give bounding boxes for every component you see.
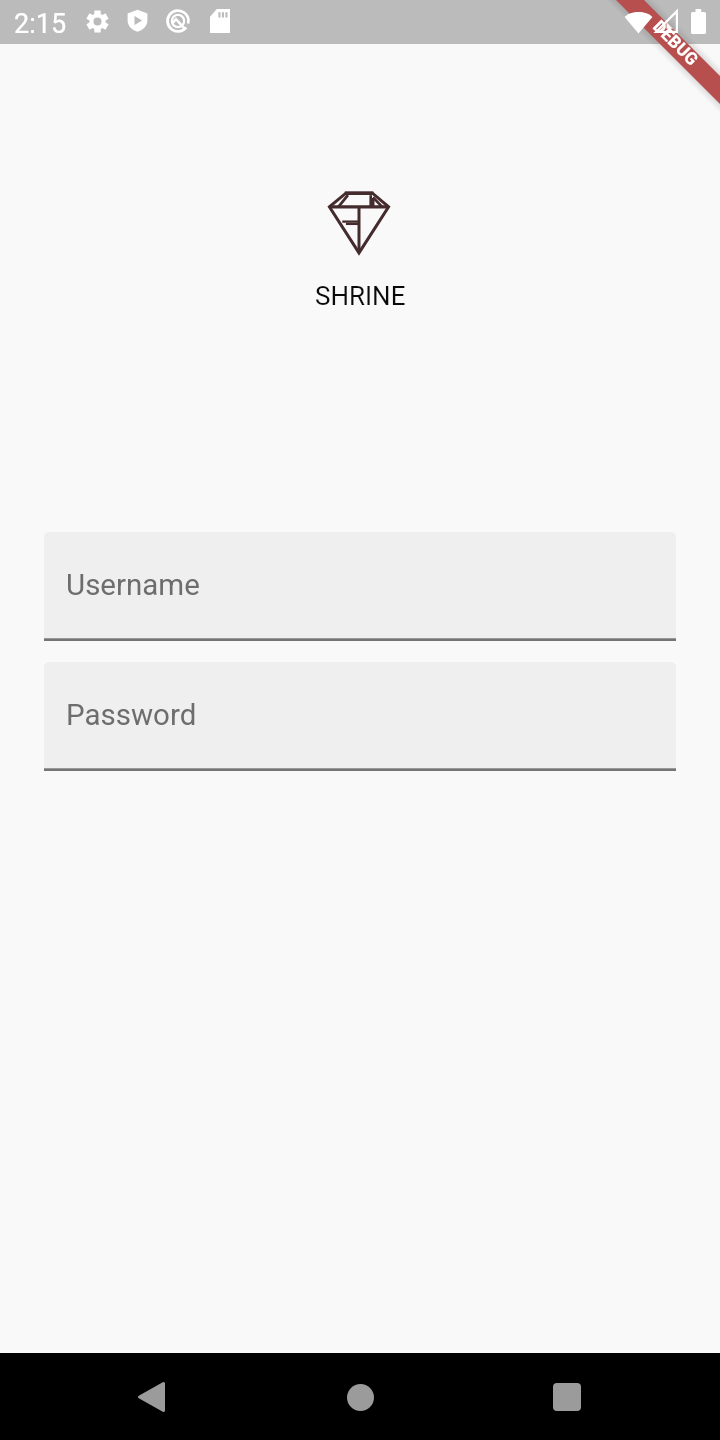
staticText: SHRINE [315, 281, 406, 311]
button[interactable]: Recents [536, 1366, 598, 1428]
staticText: Username [66, 568, 200, 603]
button[interactable]: Home [329, 1366, 391, 1428]
button[interactable]: Username [44, 532, 676, 641]
button[interactable]: Password [44, 662, 676, 771]
staticText: Password [66, 698, 197, 733]
staticText: DEBUG [649, 16, 703, 70]
button[interactable]: Back [120, 1366, 182, 1428]
staticText: 2:15 [14, 8, 67, 40]
